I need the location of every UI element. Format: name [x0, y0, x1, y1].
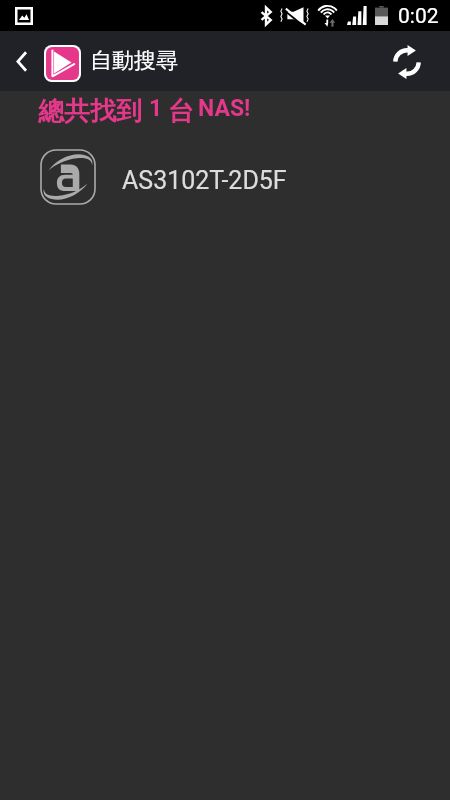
staticText: 自動搜尋: [90, 47, 178, 75]
staticText: 1: [149, 95, 163, 122]
staticText: 台: [168, 95, 194, 128]
button[interactable]: Back: [0, 31, 42, 91]
staticText: AS3102T-2D5F: [122, 166, 287, 195]
button[interactable]: Refresh: [392, 31, 450, 91]
staticText: 總共找到: [38, 95, 142, 128]
staticText: NAS!: [198, 95, 251, 122]
staticText: 0:02: [398, 4, 439, 29]
button[interactable]: AS3102T-2D5F: [0, 142, 450, 212]
